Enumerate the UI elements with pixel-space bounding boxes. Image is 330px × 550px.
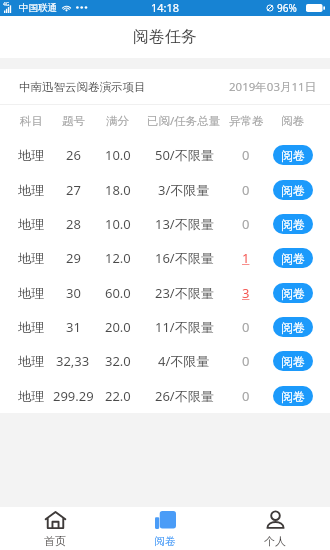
staticText: 13/不限量 [155, 215, 214, 233]
staticText: 14:18 [151, 0, 180, 15]
staticText: 阅卷 [281, 217, 305, 232]
button[interactable]: 地理 [0, 207, 330, 241]
button[interactable]: 地理 [0, 241, 330, 276]
staticText: 阅卷 [281, 183, 305, 198]
staticText: 50/不限量 [155, 146, 214, 164]
staticText: 阅卷 [281, 286, 305, 301]
staticText: 11/不限量 [155, 318, 214, 336]
button[interactable]: 首页 [0, 507, 110, 550]
staticText: 阅卷 [281, 251, 305, 266]
button[interactable]: 阅卷 [273, 386, 313, 406]
staticText: 科目 [20, 114, 43, 128]
staticText: 30 [66, 284, 81, 302]
staticText: 27 [66, 181, 81, 199]
staticText: 10.0 [105, 146, 131, 164]
staticText: 31 [66, 318, 81, 336]
staticText: 26 [66, 146, 81, 164]
staticText: 地理 [18, 388, 44, 404]
staticText: 阅卷 [281, 320, 305, 335]
button[interactable]: 地理 [0, 138, 330, 173]
staticText: 18.0 [105, 181, 131, 199]
staticText: 0 [242, 181, 250, 199]
staticText: 中南迅智云阅卷演示项目 [19, 80, 146, 94]
staticText: 4/不限量 [158, 352, 210, 370]
button[interactable]: 个人 [220, 507, 330, 550]
staticText: 60.0 [105, 284, 131, 302]
staticText: 已阅/任务总量 [147, 113, 221, 129]
staticText: 异常卷 [229, 114, 264, 128]
staticText: 中国联通 [19, 2, 57, 14]
staticText: 23/不限量 [155, 284, 214, 302]
button[interactable]: 阅卷 [273, 248, 313, 268]
button[interactable]: 地理 [0, 173, 330, 207]
staticText: 12.0 [105, 249, 131, 267]
staticText: 阅卷 [281, 389, 305, 404]
staticText: 地理 [18, 250, 44, 266]
staticText: 32,33 [56, 352, 90, 370]
staticText: 29 [66, 249, 81, 267]
staticText: 2019年03月11日 [229, 79, 317, 95]
button[interactable]: 阅卷 [273, 351, 313, 371]
button[interactable]: 地理 [0, 276, 330, 310]
staticText: 阅卷 [154, 534, 176, 548]
staticText: 96% [277, 1, 297, 15]
button[interactable]: 地理 [0, 310, 330, 344]
staticText: 地理 [18, 216, 44, 232]
staticText: 4G [3, 1, 10, 8]
staticText: 32.0 [105, 352, 131, 370]
staticText: 3/不限量 [158, 181, 210, 199]
staticText: 首页 [44, 534, 66, 548]
staticText: 16/不限量 [155, 249, 214, 267]
button[interactable]: 阅卷 [273, 145, 313, 165]
button[interactable]: 阅卷 [273, 180, 313, 200]
staticText: 0 [242, 146, 250, 164]
staticText: 26/不限量 [155, 387, 214, 405]
staticText: 满分 [106, 114, 129, 128]
staticText: 10.0 [105, 215, 131, 233]
button[interactable]: 地理 [0, 379, 330, 413]
staticText: 28 [66, 215, 81, 233]
staticText: 阅卷 [281, 148, 305, 163]
staticText: 地理 [18, 182, 44, 198]
staticText: 地理 [18, 285, 44, 301]
staticText: 299.29 [53, 387, 94, 405]
staticText: 0 [242, 318, 250, 336]
staticText: 地理 [18, 353, 44, 369]
staticText: 个人 [264, 534, 286, 548]
staticText: 0 [242, 352, 250, 370]
staticText: 1 [242, 249, 250, 267]
staticText: 题号 [62, 114, 85, 128]
staticText: 阅卷 [281, 114, 304, 128]
button[interactable]: 阅卷 [110, 507, 220, 550]
button[interactable]: 阅卷 [273, 283, 313, 303]
staticText: 0 [242, 215, 250, 233]
staticText: 22.0 [105, 387, 131, 405]
button[interactable]: 地理 [0, 344, 330, 379]
staticText: 0 [242, 387, 250, 405]
staticText: 3 [242, 284, 250, 302]
staticText: 地理 [18, 319, 44, 335]
staticText: 阅卷 [281, 354, 305, 369]
button[interactable]: 阅卷 [273, 214, 313, 234]
staticText: 20.0 [105, 318, 131, 336]
button[interactable]: 阅卷 [273, 317, 313, 337]
staticText: 阅卷任务 [133, 27, 197, 47]
staticText: 地理 [18, 147, 44, 163]
